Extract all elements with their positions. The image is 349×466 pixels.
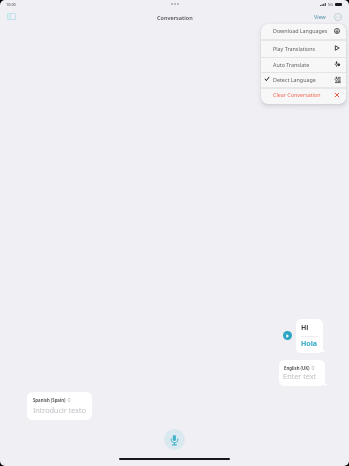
- button[interactable]: Auto Translate: [261, 58, 346, 72]
- staticText: English (UK): [284, 365, 310, 371]
- staticText: Detect Language: [273, 76, 316, 83]
- staticText: 5G: [328, 2, 333, 7]
- staticText: Clear Conversation: [273, 91, 321, 98]
- staticText: 10:00: [6, 2, 16, 7]
- staticText: Conversation: [157, 14, 193, 21]
- staticText: Spanish (Spain): [33, 397, 66, 403]
- button[interactable]: Toggle sidebar: [2, 8, 21, 25]
- staticText: Hola: [301, 339, 318, 349]
- staticText: Play Translations: [273, 45, 316, 52]
- button[interactable]: More options: [331, 10, 345, 24]
- button[interactable]: Hi: [296, 319, 323, 353]
- staticText: Hi: [301, 323, 309, 333]
- staticText: Auto Translate: [273, 61, 310, 68]
- button[interactable]: Detect Language: [261, 73, 346, 87]
- button[interactable]: Play translation: [283, 331, 292, 340]
- staticText: Download Languages: [273, 27, 328, 34]
- button[interactable]: Microphone: [164, 429, 185, 450]
- button[interactable]: Play Translations: [261, 41, 346, 57]
- button[interactable]: Clear Conversation: [261, 89, 346, 104]
- staticText: View: [314, 13, 326, 20]
- button[interactable]: English (UK): [279, 360, 325, 386]
- button[interactable]: Spanish (Spain): [27, 392, 92, 420]
- button[interactable]: Download Languages: [261, 24, 346, 39]
- staticText: Introducir texto: [33, 405, 87, 415]
- staticText: Enter text: [283, 371, 317, 381]
- button[interactable]: View: [311, 11, 329, 22]
